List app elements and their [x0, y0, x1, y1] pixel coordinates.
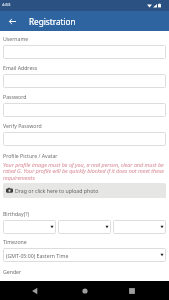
staticText: Email Address — [3, 64, 38, 71]
staticText: 4:53 — [2, 2, 11, 8]
button[interactable]: Recent apps — [122, 281, 141, 300]
staticText: Your profile image must be of you, a rea… — [3, 161, 166, 182]
staticText: Username — [3, 35, 29, 42]
button[interactable] — [58, 220, 111, 234]
button[interactable] — [3, 74, 166, 88]
button[interactable]: (GMT-05:00) Eastern Time — [3, 248, 166, 262]
button[interactable] — [113, 220, 166, 234]
button[interactable] — [3, 45, 166, 59]
staticText: Drag or click here to upload photo — [15, 187, 99, 194]
staticText: Profile Picture / Avatar — [3, 152, 58, 159]
button[interactable]: Back — [0, 11, 24, 31]
staticText: Verify Password — [3, 122, 42, 129]
button[interactable]: Back — [28, 281, 47, 300]
button[interactable] — [3, 132, 166, 146]
button[interactable]: Drag or click here to upload photo — [3, 183, 166, 198]
button[interactable]: Home — [75, 281, 94, 300]
staticText: Registration — [29, 16, 76, 27]
staticText: Birthday(?) — [3, 210, 30, 217]
button[interactable] — [3, 103, 166, 117]
staticText: Password — [3, 93, 27, 100]
staticText: Gender — [3, 268, 22, 275]
staticText: Timezone — [3, 238, 27, 245]
button[interactable] — [3, 220, 56, 234]
staticText: (GMT-05:00) Eastern Time — [6, 252, 69, 259]
